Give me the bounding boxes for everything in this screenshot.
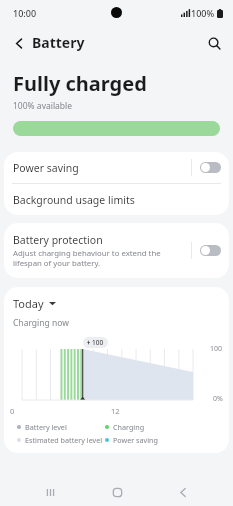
- button[interactable]: Power saving: [4, 152, 229, 183]
- staticText: Background usage limits: [13, 193, 135, 207]
- button[interactable]: Search: [201, 30, 227, 56]
- staticText: Charging: [113, 422, 145, 432]
- staticText: Fully charged: [13, 70, 147, 97]
- staticText: Battery level: [25, 422, 67, 432]
- staticText: Today: [13, 296, 44, 311]
- staticText: Estimated battery level: [25, 435, 103, 445]
- staticText: Power saving: [113, 435, 158, 445]
- staticText: Battery protection: [13, 233, 103, 247]
- staticText: 10:00: [13, 7, 37, 19]
- staticText: 100: [210, 344, 223, 354]
- staticText: 100: [92, 338, 104, 347]
- staticText: Battery: [32, 33, 85, 52]
- staticText: 0%: [213, 394, 223, 404]
- button[interactable]: Background usage limits: [4, 184, 229, 215]
- button[interactable]: Power saving toggle: [200, 162, 221, 173]
- staticText: 12: [111, 406, 120, 416]
- button[interactable]: Home: [100, 478, 134, 506]
- button[interactable]: Back: [166, 478, 200, 506]
- button[interactable]: Back: [6, 30, 32, 56]
- button[interactable]: Battery protection toggle: [200, 245, 221, 256]
- button[interactable]: Today: [13, 296, 56, 311]
- staticText: 100%: [191, 7, 215, 19]
- button[interactable]: Recent apps: [33, 478, 67, 506]
- staticText: Power saving: [13, 161, 191, 175]
- staticText: 100% available: [13, 100, 73, 112]
- button[interactable]: Battery protection: [4, 223, 229, 278]
- staticText: Adjust charging behaviour to extend the …: [13, 248, 185, 268]
- staticText: Charging now: [13, 317, 69, 329]
- staticText: 0: [10, 406, 15, 416]
